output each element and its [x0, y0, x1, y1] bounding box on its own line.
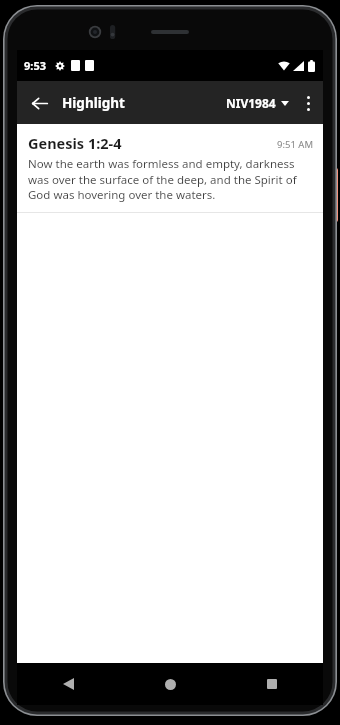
button[interactable]: Back: [17, 663, 119, 705]
button[interactable]: Recent apps: [221, 663, 323, 705]
staticText: Genesis 1:2-4: [28, 133, 122, 153]
button[interactable]: More options: [293, 88, 323, 118]
button[interactable]: NIV1984: [222, 89, 293, 117]
button[interactable]: Navigate up: [21, 85, 57, 121]
staticText: 9:53: [24, 58, 46, 73]
staticText: NIV1984: [226, 95, 276, 111]
staticText: Highlight: [62, 94, 125, 112]
staticText: Now the earth was formless and empty, da…: [28, 156, 314, 202]
button[interactable]: Home: [119, 663, 221, 705]
button[interactable]: Genesis 1:2-4: [17, 124, 323, 212]
staticText: 9:51 AM: [277, 138, 314, 151]
